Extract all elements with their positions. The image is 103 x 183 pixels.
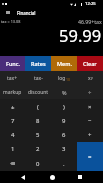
button[interactable]: ± <box>0 99 25 114</box>
button[interactable]: ) <box>51 99 77 114</box>
button[interactable]: x <box>77 71 103 85</box>
button[interactable]: Rates <box>25 56 51 71</box>
staticText: 2 <box>36 145 40 153</box>
button[interactable]: 4 <box>0 128 25 142</box>
button[interactable]: 1 <box>0 142 25 156</box>
button[interactable]: Backspace <box>0 156 25 171</box>
staticText: 1 <box>11 145 15 153</box>
button[interactable]: Home <box>46 171 58 183</box>
button[interactable]: ( <box>25 99 51 114</box>
button[interactable]: 3 <box>51 142 77 156</box>
staticText: tax = 13.08 <box>1 19 21 24</box>
staticText: y <box>91 75 93 80</box>
staticText: 10 <box>66 77 71 82</box>
button[interactable]: − <box>77 114 103 128</box>
staticText: ± <box>11 103 15 111</box>
staticText: x <box>88 75 91 82</box>
button[interactable]: 9 <box>51 114 77 128</box>
button[interactable]: 5 <box>25 128 51 142</box>
staticText: 5 <box>36 131 40 139</box>
staticText: ) <box>63 103 65 111</box>
staticText: log <box>58 75 66 82</box>
button[interactable]: % <box>51 85 77 99</box>
staticText: Financial <box>17 10 36 16</box>
staticText: 0 <box>36 160 40 168</box>
button[interactable]: Mem. <box>51 56 77 71</box>
button[interactable]: 0 <box>25 156 51 171</box>
staticText: Mem. <box>57 60 72 67</box>
button[interactable]: Func. <box>0 56 25 71</box>
button[interactable]: × <box>77 99 103 114</box>
staticText: discount <box>28 89 49 96</box>
button[interactable]: 7 <box>0 114 25 128</box>
button[interactable]: 8 <box>25 114 51 128</box>
button[interactable]: log <box>51 71 77 85</box>
button[interactable]: Clear <box>77 56 103 71</box>
staticText: . <box>63 160 65 168</box>
staticText: ÷ <box>88 88 92 96</box>
button[interactable]: . <box>51 156 77 171</box>
staticText: Func. <box>6 60 20 67</box>
button[interactable]: 6 <box>51 128 77 142</box>
button[interactable]: Recents <box>74 171 86 183</box>
button[interactable]: 2 <box>25 142 51 156</box>
staticText: × <box>88 103 92 111</box>
button[interactable]: ÷ <box>77 85 103 99</box>
button[interactable]: = <box>77 142 103 171</box>
staticText: markup <box>3 89 22 96</box>
staticText: ( <box>37 103 39 111</box>
button[interactable]: + <box>77 128 103 142</box>
staticText: 12:25 <box>85 1 96 7</box>
staticText: tax- <box>34 75 43 82</box>
button[interactable]: discount <box>25 85 51 99</box>
button[interactable]: tax+ <box>0 71 25 85</box>
staticText: 9 <box>62 117 66 125</box>
staticText: 6 <box>62 131 66 139</box>
button[interactable]: Menu <box>2 7 14 18</box>
staticText: = <box>88 153 92 161</box>
staticText: Rates <box>31 60 46 67</box>
staticText: 4 <box>11 131 15 139</box>
button[interactable]: Back <box>17 171 29 183</box>
staticText: 8 <box>36 117 40 125</box>
staticText: % <box>62 89 67 96</box>
staticText: 3 <box>62 145 66 153</box>
staticText: 59.99 <box>59 24 102 46</box>
staticText: 7 <box>11 117 15 125</box>
staticText: tax+ <box>7 75 18 82</box>
button[interactable]: tax- <box>25 71 51 85</box>
staticText: + <box>88 131 92 139</box>
staticText: − <box>88 117 92 125</box>
staticText: Clear <box>83 60 97 67</box>
staticText: 46.99+tax <box>78 18 102 25</box>
button[interactable]: markup <box>0 85 25 99</box>
